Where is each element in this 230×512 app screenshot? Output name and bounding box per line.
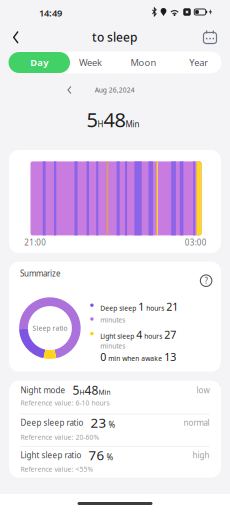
staticText: 23 % <box>90 414 115 431</box>
button[interactable]: Week <box>70 51 111 73</box>
staticText: Moon <box>130 56 156 69</box>
staticText: normal <box>183 417 209 428</box>
staticText: Day <box>30 56 48 69</box>
staticText: 76 % <box>88 446 113 464</box>
staticText: low <box>196 385 209 395</box>
button[interactable]: Back <box>7 25 25 50</box>
staticText: Night mode <box>20 385 65 395</box>
staticText: minutes <box>100 341 125 350</box>
staticText: 0 min when awake 13 <box>100 350 176 364</box>
button[interactable]: Moon <box>111 51 176 73</box>
staticText: Sleep ratio <box>32 324 67 333</box>
button[interactable]: Help <box>199 274 213 288</box>
staticText: Week <box>79 56 102 69</box>
staticText: Light sleep 4 hours 27 <box>100 327 176 342</box>
staticText: to sleep <box>92 29 137 45</box>
staticText: Reference value: 6-10 hours <box>20 399 109 407</box>
staticText: Deep sleep 1 hours 21 <box>100 299 178 314</box>
staticText: 5H48Min <box>72 382 110 398</box>
staticText: Summarize <box>20 268 61 279</box>
staticText: high <box>192 450 209 460</box>
button[interactable]: Previous day <box>64 83 75 97</box>
button[interactable]: Day <box>8 52 70 73</box>
staticText: 5H48Min <box>86 106 139 133</box>
staticText: Aug 26,2024 <box>95 86 135 94</box>
staticText: Deep sleep ratio <box>20 417 83 428</box>
staticText: Reference value: 20-60% <box>20 433 99 442</box>
staticText: Reference value: <55% <box>20 465 93 474</box>
staticText: 14:49 <box>39 7 62 19</box>
staticText: 21:00 <box>24 237 46 248</box>
staticText: Year <box>189 56 208 69</box>
button[interactable]: Year <box>176 51 221 73</box>
staticText: minutes <box>100 315 125 324</box>
button[interactable]: Calendar <box>198 26 221 48</box>
staticText: Light sleep ratio <box>20 450 81 460</box>
staticText: 03:00 <box>185 237 207 248</box>
staticText: ? <box>205 275 208 286</box>
